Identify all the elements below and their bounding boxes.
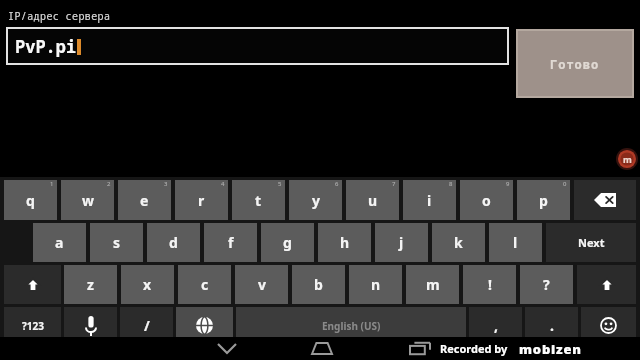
staticText: l (513, 233, 518, 252)
button[interactable]: f (204, 223, 257, 262)
staticText: p (539, 191, 548, 210)
staticText: 1 (50, 180, 54, 188)
button[interactable]: v (235, 265, 288, 304)
staticText: 2 (107, 180, 111, 188)
button[interactable]: g (261, 223, 314, 262)
staticText: z (87, 275, 94, 294)
button[interactable]: n (349, 265, 402, 304)
button[interactable]: r (175, 180, 228, 220)
staticText: Recorded by (440, 341, 508, 356)
button[interactable]: o (460, 180, 513, 220)
staticText: t (255, 191, 262, 210)
button[interactable]: k (432, 223, 485, 262)
button[interactable]: z (64, 265, 117, 304)
button[interactable]: p (517, 180, 570, 220)
button[interactable]: Slash (120, 307, 173, 344)
staticText: 9 (506, 180, 510, 188)
button[interactable]: m (406, 265, 459, 304)
button[interactable]: l (489, 223, 542, 262)
staticText: , (494, 316, 498, 335)
staticText: g (283, 233, 292, 252)
button[interactable]: j (375, 223, 428, 262)
staticText: i (427, 191, 432, 210)
staticText: 3 (164, 180, 168, 188)
button[interactable]: Emoji (581, 307, 636, 344)
button[interactable]: ? (520, 265, 573, 304)
staticText: English (US) (322, 319, 381, 333)
button[interactable]: q (4, 180, 57, 220)
staticText: b (314, 275, 323, 294)
button[interactable]: y (289, 180, 342, 220)
staticText: ? (543, 275, 550, 294)
button[interactable]: Готово (516, 29, 634, 98)
staticText: PvP.pi (15, 35, 77, 58)
button[interactable]: Period (525, 307, 578, 344)
staticText: u (368, 191, 378, 210)
staticText: 7 (392, 180, 396, 188)
button[interactable]: e (118, 180, 171, 220)
button[interactable]: Symbols (4, 307, 61, 344)
staticText: ! (488, 275, 492, 294)
staticText: n (371, 275, 381, 294)
staticText: k (454, 233, 463, 252)
staticText: 8 (449, 180, 453, 188)
staticText: m (623, 153, 632, 165)
staticText: e (140, 191, 149, 210)
staticText: m (426, 275, 440, 294)
staticText: 5 (278, 180, 282, 188)
button[interactable]: Comma (469, 307, 522, 344)
button[interactable]: ! (463, 265, 516, 304)
button[interactable]: Space (236, 307, 466, 344)
staticText: ?123 (22, 319, 44, 333)
button[interactable]: w (61, 180, 114, 220)
staticText: 4 (221, 180, 225, 188)
staticText: IP/адрес сервера (8, 9, 111, 23)
button[interactable]: Mobizen recorder (616, 148, 638, 170)
button[interactable]: Hide keyboard (205, 340, 249, 357)
staticText: c (201, 275, 209, 294)
staticText: mobizen (519, 340, 582, 358)
button[interactable]: Next (546, 223, 636, 262)
button[interactable]: Voice input (64, 307, 117, 344)
button[interactable]: x (121, 265, 174, 304)
button[interactable]: u (346, 180, 399, 220)
staticText: Next (578, 235, 605, 250)
staticText: x (143, 275, 152, 294)
staticText: 0 (563, 180, 567, 188)
staticText: 6 (335, 180, 339, 188)
staticText: Готово (550, 56, 600, 72)
staticText: y (312, 191, 320, 210)
staticText: w (82, 191, 94, 210)
button[interactable]: Delete (574, 180, 636, 220)
button[interactable]: t (232, 180, 285, 220)
button[interactable]: d (147, 223, 200, 262)
button[interactable]: c (178, 265, 231, 304)
staticText: . (550, 316, 554, 335)
button[interactable]: a (33, 223, 86, 262)
button[interactable]: Change keyboard (176, 307, 233, 344)
staticText: / (144, 316, 150, 335)
button[interactable]: Shift (577, 265, 636, 304)
button[interactable]: b (292, 265, 345, 304)
button[interactable]: Recent apps (398, 340, 442, 357)
button[interactable]: i (403, 180, 456, 220)
button[interactable]: s (90, 223, 143, 262)
staticText: v (258, 275, 266, 294)
button[interactable]: PvP.pi (6, 27, 509, 65)
staticText: d (169, 233, 178, 252)
staticText: j (399, 233, 404, 252)
staticText: o (482, 191, 491, 210)
staticText: r (198, 191, 205, 210)
staticText: s (113, 233, 121, 252)
staticText: a (55, 233, 64, 252)
staticText: f (228, 233, 234, 252)
button[interactable]: h (318, 223, 371, 262)
staticText: h (340, 233, 350, 252)
staticText: q (26, 191, 35, 210)
button[interactable]: Home (300, 340, 344, 357)
button[interactable]: Shift (4, 265, 61, 304)
